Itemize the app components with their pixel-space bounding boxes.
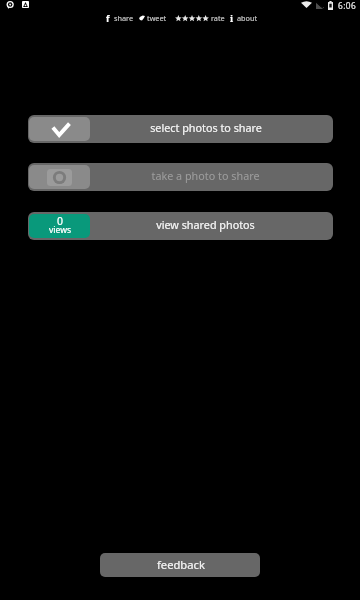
- button[interactable]: 0: [28, 212, 333, 240]
- staticText: select photos to share: [150, 120, 262, 135]
- staticText: i: [230, 12, 234, 24]
- button[interactable]: i: [230, 12, 258, 24]
- staticText: take a photo to share: [151, 168, 260, 183]
- staticText: feedback: [157, 557, 205, 572]
- staticText: view shared photos: [156, 217, 255, 232]
- staticText: f: [106, 12, 110, 24]
- staticText: about: [237, 13, 258, 23]
- staticText: 6:06: [338, 0, 357, 11]
- staticText: rate: [211, 13, 225, 23]
- staticText: 0: [57, 214, 64, 228]
- button[interactable]: take a photo to share: [28, 163, 333, 191]
- staticText: share: [114, 13, 134, 23]
- button[interactable]: rate: [175, 12, 225, 24]
- staticText: tweet: [147, 13, 167, 23]
- staticText: views: [49, 224, 72, 236]
- button[interactable]: f: [106, 12, 134, 24]
- button[interactable]: tweet: [139, 12, 167, 24]
- button[interactable]: select photos to share: [28, 115, 333, 143]
- button[interactable]: feedback: [100, 553, 260, 577]
